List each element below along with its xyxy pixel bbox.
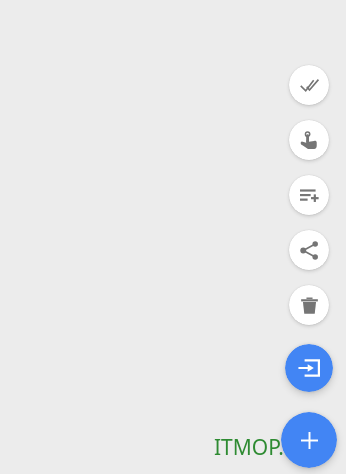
button[interactable]: Share [289,230,329,270]
button[interactable]: Add to queue [289,175,329,215]
button[interactable]: Select mode [289,120,329,160]
button[interactable]: Move to folder [285,344,333,392]
button[interactable]: Add [281,412,337,468]
staticText: ITMOP.COM [214,433,332,462]
button[interactable]: Select all [289,65,329,105]
button[interactable]: Delete [289,285,329,325]
